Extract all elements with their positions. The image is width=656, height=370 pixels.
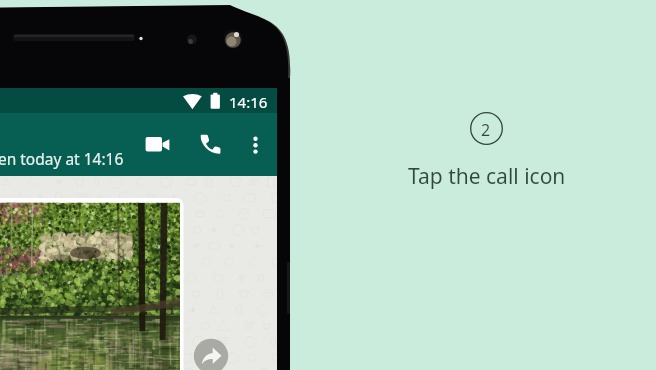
button[interactable]: More options xyxy=(242,131,270,159)
button[interactable]: Forward xyxy=(194,339,228,370)
button[interactable]: Call xyxy=(195,131,225,161)
staticText: 14:16 xyxy=(229,92,268,112)
staticText: 2 xyxy=(481,119,491,141)
staticText: Tap the call icon xyxy=(408,162,566,191)
button[interactable]: Step 2 xyxy=(470,112,503,145)
staticText: last seen today at 14:16 xyxy=(0,148,124,169)
button[interactable]: Video call xyxy=(143,131,173,161)
